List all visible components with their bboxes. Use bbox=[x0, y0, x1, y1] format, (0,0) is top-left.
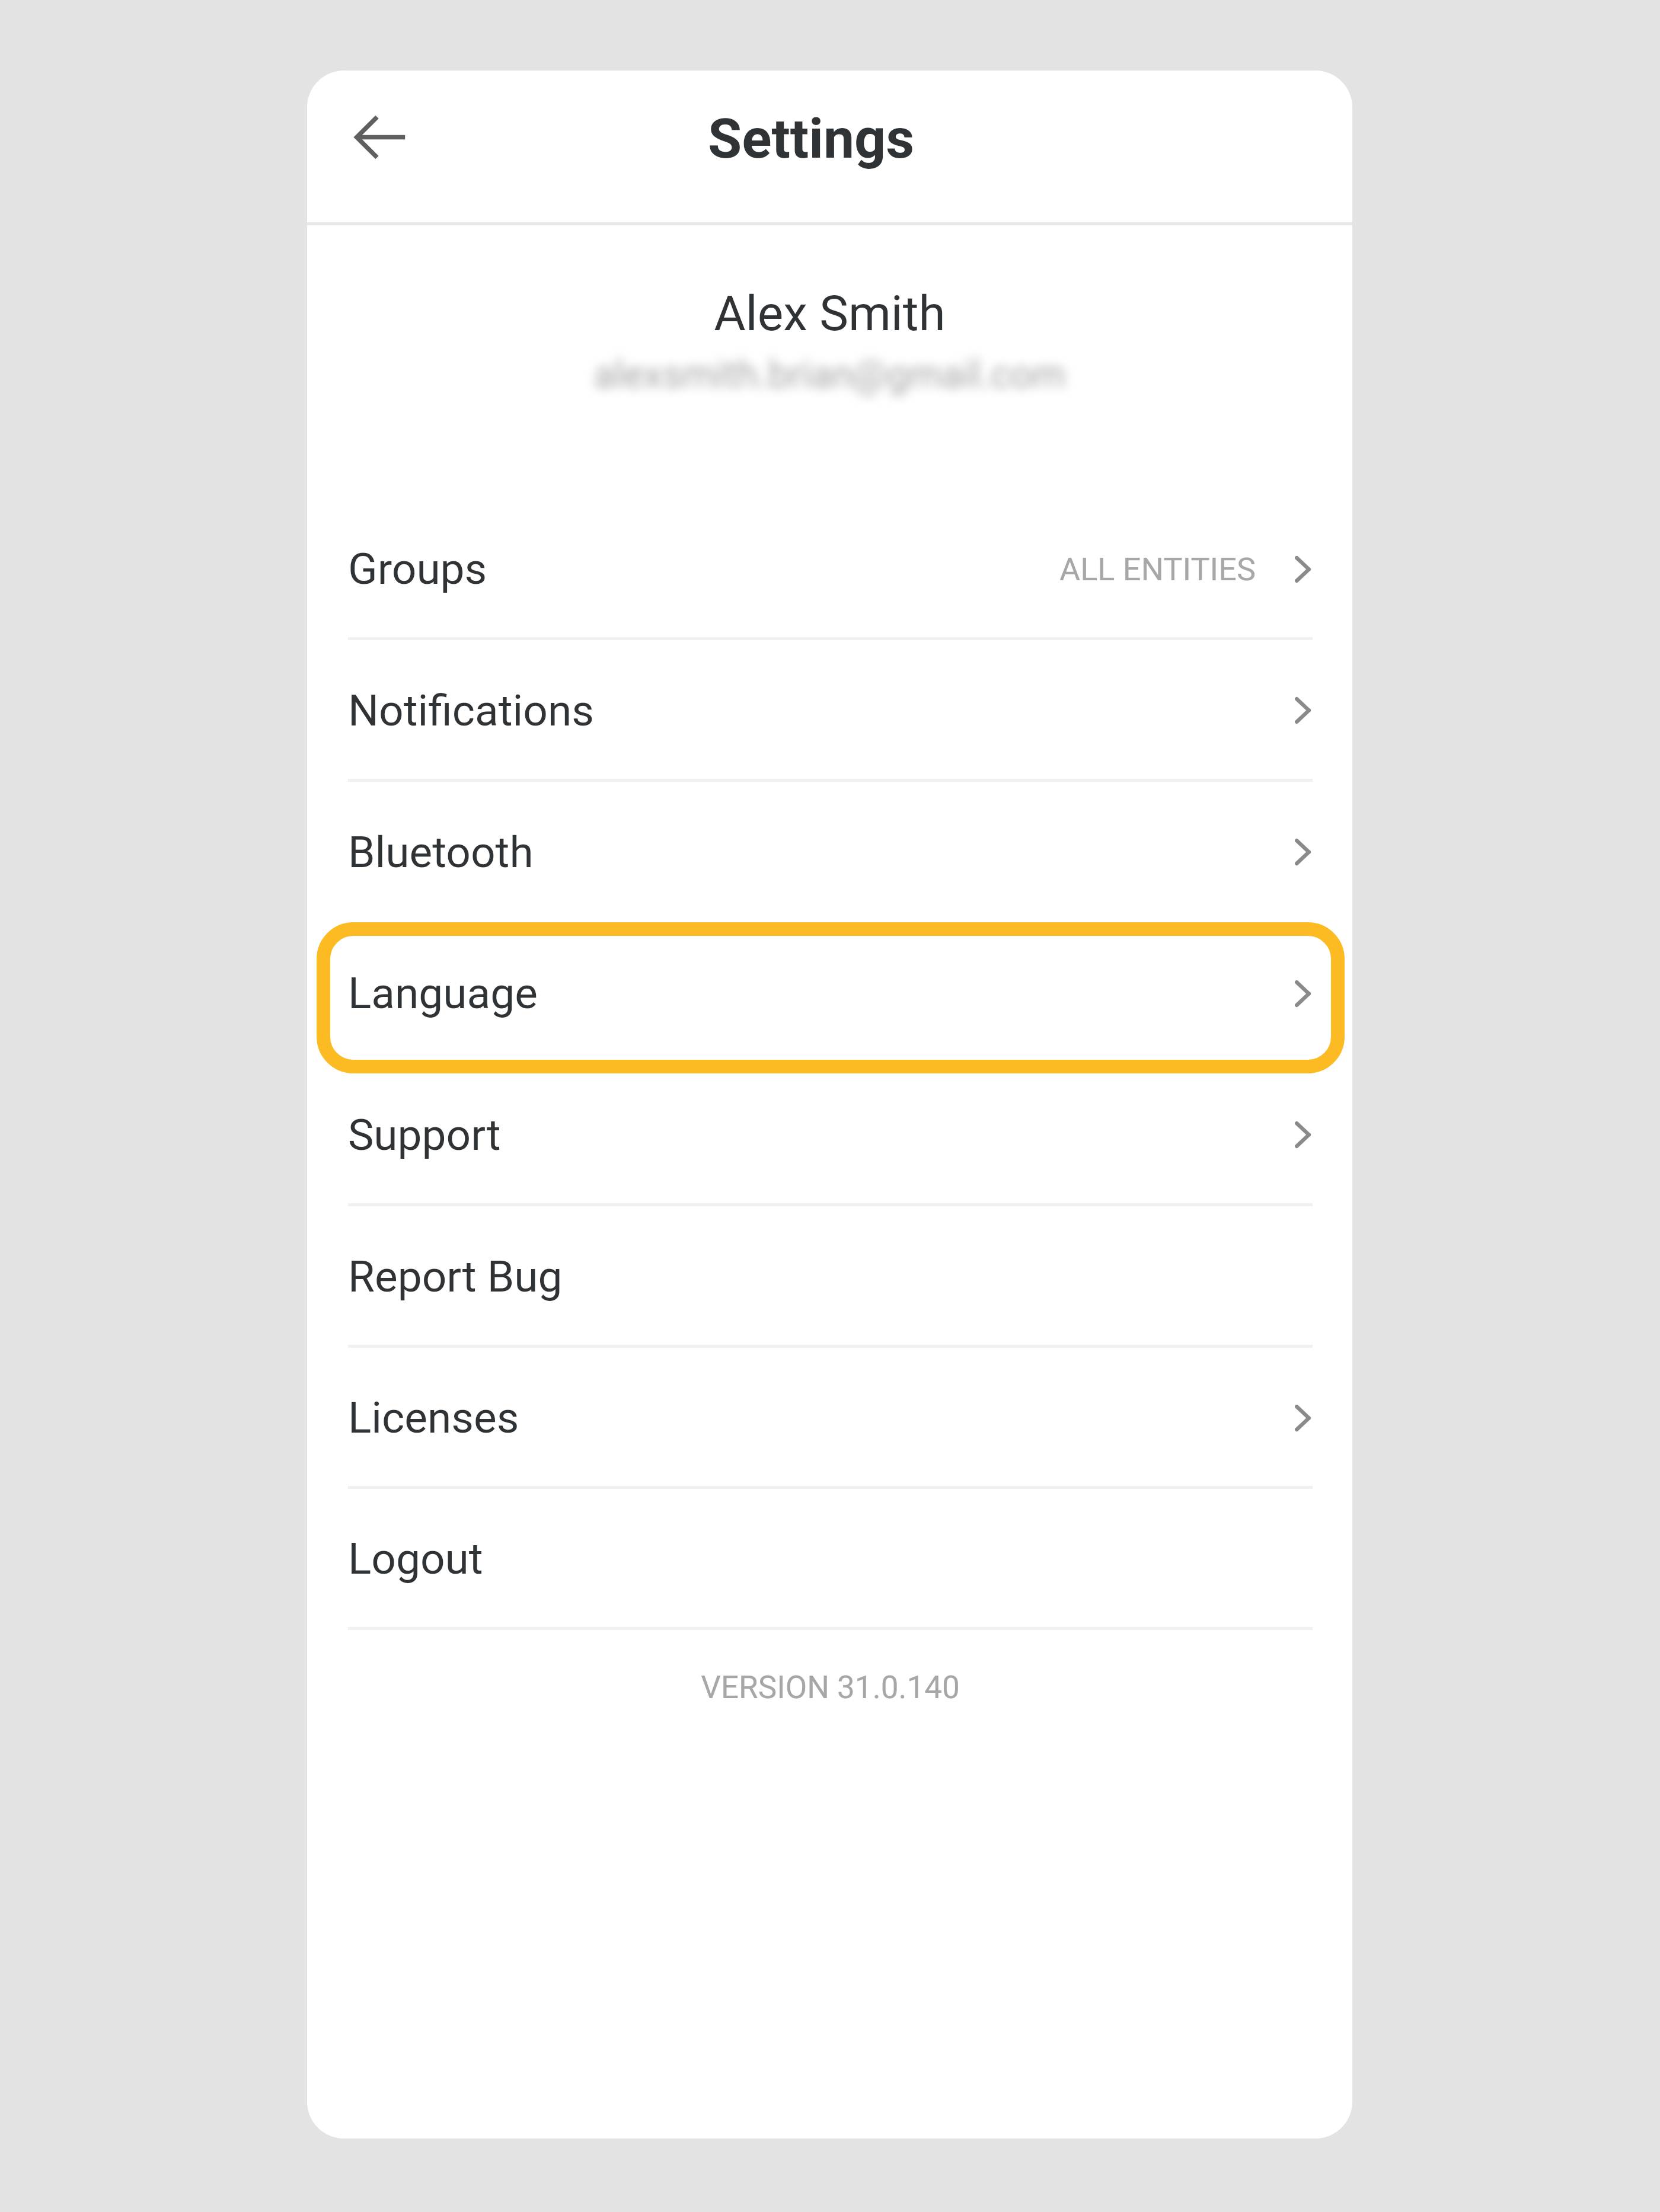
staticText: alexsmith.brian@gmail.com bbox=[307, 353, 1352, 397]
button[interactable]: Support bbox=[348, 1065, 1313, 1203]
staticText: Alex Smith bbox=[307, 285, 1352, 342]
button[interactable]: Licenses bbox=[348, 1348, 1313, 1486]
staticText: VERSION 31.0.140 bbox=[348, 1669, 1313, 1706]
button[interactable]: Notifications bbox=[348, 640, 1313, 779]
staticText: Language bbox=[348, 968, 538, 1019]
staticText: Notifications bbox=[348, 685, 594, 736]
staticText: Logout bbox=[348, 1533, 483, 1584]
staticText: Groups bbox=[348, 544, 487, 594]
staticText: Support bbox=[348, 1110, 501, 1161]
button[interactable]: Bluetooth bbox=[348, 782, 1313, 920]
button[interactable]: Groups bbox=[348, 499, 1313, 637]
staticText: Settings bbox=[708, 107, 915, 171]
button[interactable]: Back bbox=[333, 89, 428, 184]
button[interactable]: Logout bbox=[348, 1489, 1313, 1627]
staticText: ALL ENTITIES bbox=[1059, 551, 1256, 588]
button[interactable]: Language bbox=[348, 923, 1313, 1062]
staticText: Licenses bbox=[348, 1392, 519, 1443]
staticText: Report Bug bbox=[348, 1251, 563, 1302]
staticText: Bluetooth bbox=[348, 827, 534, 878]
button[interactable]: Report Bug bbox=[348, 1206, 1313, 1345]
